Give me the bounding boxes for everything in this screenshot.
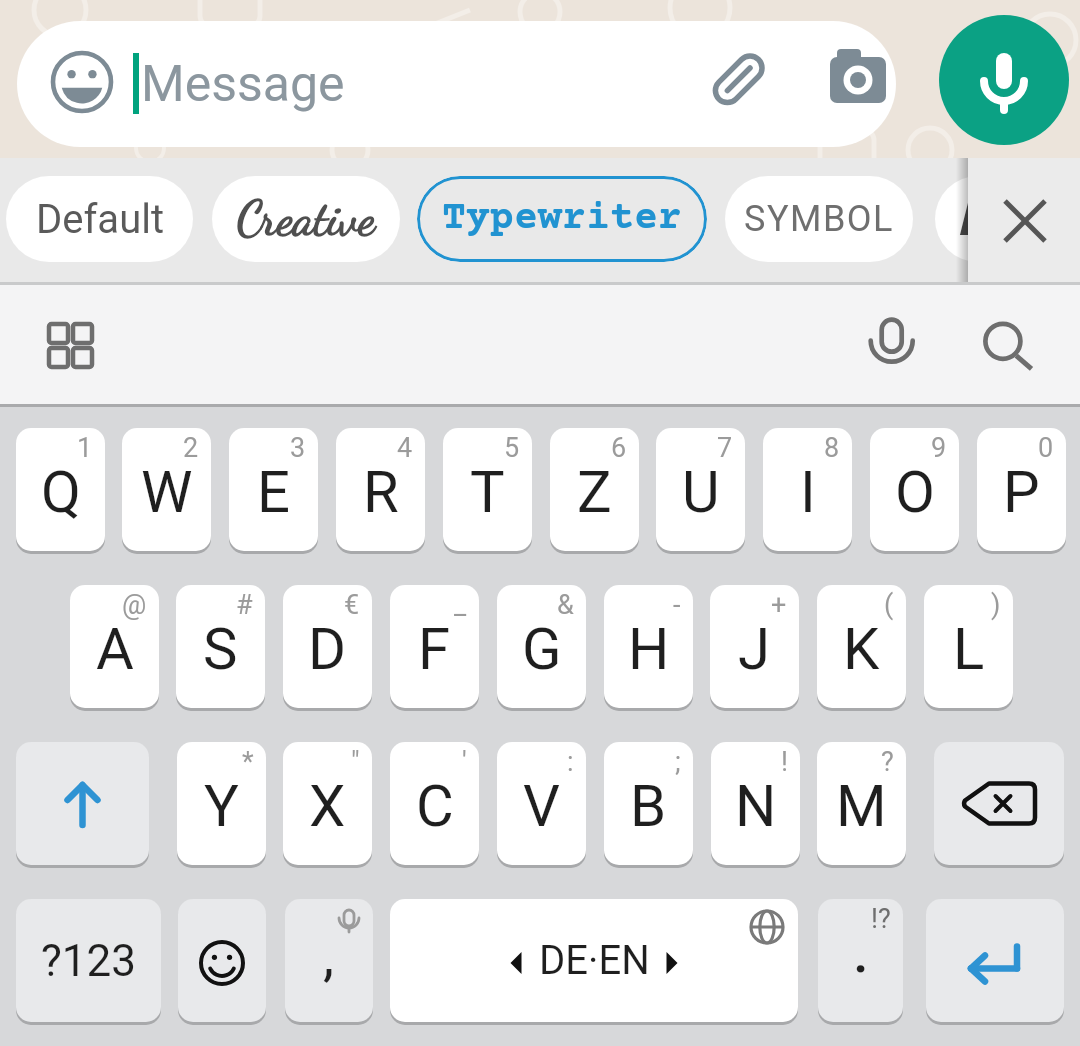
staticText: ) xyxy=(991,589,1001,621)
button[interactable] xyxy=(934,742,1064,865)
button[interactable] xyxy=(852,304,932,384)
staticText: 9 xyxy=(931,432,947,464)
button[interactable] xyxy=(178,899,266,1022)
staticText: 7 xyxy=(717,432,733,464)
staticText: ; xyxy=(675,746,681,778)
staticText: B xyxy=(957,192,987,246)
staticText: Default xyxy=(36,196,164,243)
button[interactable]: G xyxy=(497,585,586,708)
button[interactable]: Y xyxy=(177,742,266,865)
button[interactable]: O xyxy=(870,428,959,551)
button[interactable]: Message xyxy=(17,21,896,147)
staticText: 2 xyxy=(183,432,199,464)
staticText: : xyxy=(567,746,574,778)
button[interactable] xyxy=(16,742,149,865)
staticText: SYMBOL xyxy=(744,198,895,240)
button[interactable]: L xyxy=(924,585,1013,708)
button[interactable]: B xyxy=(935,176,1080,262)
staticText: L xyxy=(953,615,985,683)
staticText: E xyxy=(257,458,290,526)
button[interactable]: Default xyxy=(6,176,193,262)
staticText: & xyxy=(557,589,574,621)
button[interactable] xyxy=(30,304,110,384)
button[interactable]: B xyxy=(604,742,693,865)
button[interactable]: F xyxy=(390,585,479,708)
button[interactable]: . xyxy=(818,899,903,1022)
button[interactable] xyxy=(939,15,1069,145)
staticText: ' xyxy=(462,746,467,778)
staticText: C xyxy=(416,772,454,840)
staticText: 0 xyxy=(1038,432,1054,464)
button[interactable] xyxy=(968,304,1048,384)
staticText: € xyxy=(344,589,360,621)
staticText: _ xyxy=(454,589,467,621)
staticText: R xyxy=(363,458,399,526)
button[interactable]: M xyxy=(817,742,906,865)
button[interactable]: J xyxy=(710,585,799,708)
button[interactable]: D xyxy=(283,585,372,708)
button[interactable]: V xyxy=(497,742,586,865)
button[interactable]: K xyxy=(817,585,906,708)
staticText: K xyxy=(843,615,880,683)
button[interactable]: Typewriter xyxy=(417,176,707,262)
staticText: ?123 xyxy=(41,935,136,987)
staticText: T xyxy=(470,458,505,526)
button[interactable]: A xyxy=(70,585,159,708)
staticText: P xyxy=(1003,458,1040,526)
staticText: ! xyxy=(781,746,788,778)
staticText: N xyxy=(735,772,777,840)
button[interactable]: S xyxy=(176,585,265,708)
staticText: F xyxy=(418,615,451,683)
staticText: 4 xyxy=(397,432,413,464)
button[interactable]: C xyxy=(390,742,479,865)
button[interactable]: Q xyxy=(16,428,105,551)
button[interactable]: H xyxy=(604,585,693,708)
staticText: W xyxy=(141,458,193,526)
staticText: M xyxy=(836,772,887,840)
button[interactable]: T xyxy=(443,428,532,551)
button[interactable]: Z xyxy=(550,428,639,551)
staticText: D xyxy=(308,615,347,683)
staticText: " xyxy=(351,746,360,778)
button[interactable]: U xyxy=(656,428,745,551)
staticText: 6 xyxy=(611,432,627,464)
button[interactable]: P xyxy=(977,428,1066,551)
staticText: Creative xyxy=(237,190,376,248)
staticText: !? xyxy=(871,903,891,935)
button[interactable]: X xyxy=(283,742,372,865)
staticText: I xyxy=(800,458,816,526)
staticText: + xyxy=(771,589,787,621)
button[interactable] xyxy=(926,899,1064,1022)
button[interactable]: N xyxy=(711,742,800,865)
button[interactable]: R xyxy=(336,428,425,551)
staticText: . xyxy=(853,920,869,986)
staticText: @ xyxy=(122,589,147,621)
staticText: 5 xyxy=(504,432,520,464)
button[interactable]: W xyxy=(122,428,211,551)
button[interactable] xyxy=(990,190,1056,256)
button[interactable]: , xyxy=(285,899,373,1022)
staticText: S xyxy=(203,615,238,683)
staticText: U xyxy=(682,458,720,526)
button[interactable]: I xyxy=(763,428,852,551)
staticText: Z xyxy=(577,458,612,526)
staticText: , xyxy=(323,923,335,989)
staticText: # xyxy=(236,589,253,621)
staticText: J xyxy=(738,615,771,683)
staticText: G xyxy=(522,615,562,683)
button[interactable]: E xyxy=(229,428,318,551)
staticText: V xyxy=(523,772,560,840)
staticText: 3 xyxy=(290,432,306,464)
staticText: 8 xyxy=(824,432,840,464)
button[interactable]: ?123 xyxy=(16,899,161,1022)
staticText: A xyxy=(96,615,134,683)
staticText: * xyxy=(242,746,254,778)
button[interactable]: DE·EN xyxy=(390,899,798,1022)
button[interactable]: Creative xyxy=(212,176,400,262)
staticText: - xyxy=(673,589,681,621)
button[interactable]: SYMBOL xyxy=(725,176,913,262)
staticText: O xyxy=(895,458,935,526)
staticText: ( xyxy=(884,589,894,621)
staticText: ? xyxy=(881,746,894,778)
staticText: DE·EN xyxy=(539,937,650,984)
